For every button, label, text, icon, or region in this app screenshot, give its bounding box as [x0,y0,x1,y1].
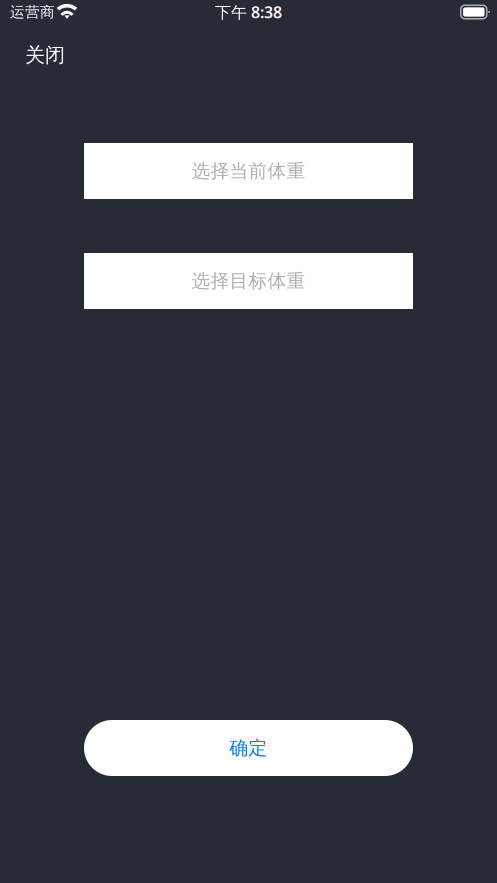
staticText: 选择目标体重 [191,269,305,292]
staticText: 运营商 [10,3,55,21]
button[interactable]: 选择目标体重 [84,253,413,309]
staticText: 选择当前体重 [191,159,305,182]
staticText: 确定 [229,736,267,759]
staticText: 下午 8:38 [215,1,282,23]
staticText: 关闭 [25,43,65,67]
button[interactable]: 选择当前体重 [84,143,413,199]
button[interactable]: 关闭 [0,20,90,90]
button[interactable]: 确定 [84,720,413,776]
